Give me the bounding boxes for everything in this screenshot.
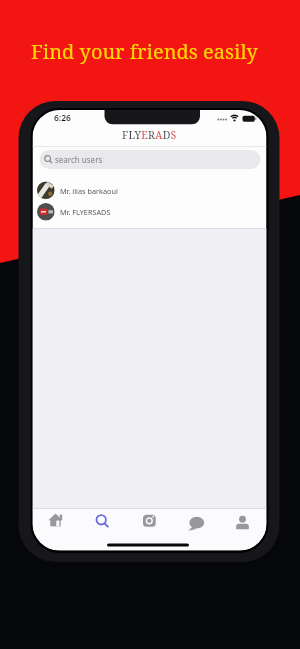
- button[interactable]: search users: [39, 150, 260, 169]
- button[interactable]: Mr. FLYERSADS: [33, 201, 266, 222]
- staticText: Mr. FLYERSADS: [60, 207, 111, 217]
- button[interactable]: [32, 509, 78, 551]
- staticText: 6:26: [54, 112, 71, 124]
- staticText: Mr. ilias barkaoui: [60, 186, 118, 196]
- button[interactable]: [78, 509, 125, 551]
- button[interactable]: [172, 509, 219, 551]
- staticText: search users: [55, 154, 103, 165]
- staticText: Find your friends easily: [31, 38, 258, 65]
- staticText: FLYERADS: [122, 128, 177, 142]
- button[interactable]: [219, 509, 266, 551]
- button[interactable]: Mr. ilias barkaoui: [33, 180, 266, 201]
- button[interactable]: [125, 509, 172, 551]
